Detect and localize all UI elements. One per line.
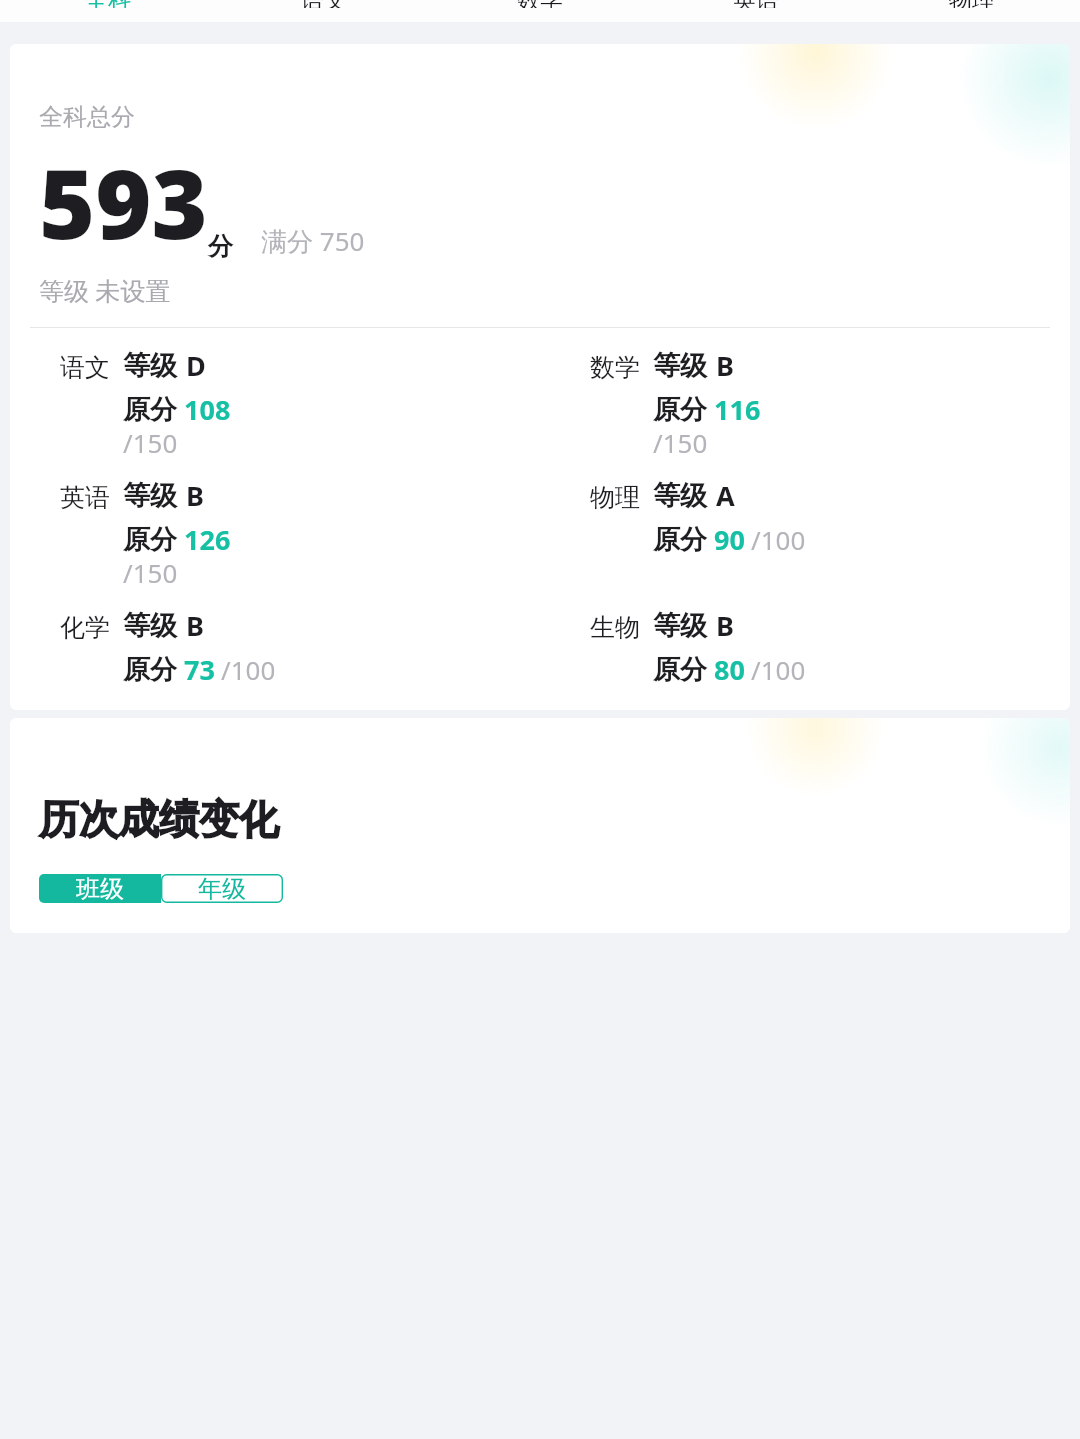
staticText: 73 — [184, 651, 215, 688]
staticText: B — [716, 347, 734, 384]
staticText: 90 — [714, 521, 745, 558]
staticText: B — [186, 477, 204, 514]
button[interactable]: 班级 — [39, 874, 161, 903]
staticText: 等级 — [653, 479, 707, 513]
staticText: 116 — [714, 391, 761, 428]
staticText: 原分 — [653, 393, 707, 427]
staticText: 语文 — [301, 0, 347, 8]
staticText: 年级 — [198, 874, 246, 903]
staticText: 英语 — [10, 482, 110, 513]
staticText: 历次成绩变化 — [39, 794, 279, 844]
staticText: 80 — [714, 651, 745, 688]
staticText: 等级 — [653, 349, 707, 383]
button[interactable]: 物理 — [864, 0, 1080, 22]
button[interactable]: 英语 — [648, 0, 864, 22]
staticText: 分 — [208, 231, 233, 262]
staticText: 满分 750 — [261, 223, 365, 259]
staticText: 等级 — [123, 349, 177, 383]
staticText: 英语 — [733, 0, 779, 8]
button[interactable]: 语文 — [216, 0, 432, 22]
staticText: 全科总分 — [39, 102, 135, 132]
staticText: 原分 — [653, 523, 707, 557]
staticText: 等级 — [123, 479, 177, 513]
button[interactable]: 数学 — [432, 0, 648, 22]
staticText: 班级 — [76, 874, 124, 903]
staticText: 等级 — [123, 609, 177, 643]
staticText: 化学 — [10, 612, 110, 643]
staticText: /150 — [123, 555, 178, 590]
staticText: /150 — [653, 425, 708, 460]
staticText: B — [186, 607, 204, 644]
button[interactable]: 物理 — [540, 477, 1070, 558]
staticText: 数学 — [540, 352, 640, 383]
staticText: D — [186, 347, 206, 384]
button[interactable]: 数学 — [540, 347, 1070, 463]
staticText: 全科 — [85, 0, 131, 8]
button[interactable]: 年级 — [161, 874, 283, 903]
staticText: /100 — [751, 522, 806, 557]
button[interactable]: 生物 — [540, 607, 1070, 688]
staticText: 108 — [184, 391, 231, 428]
staticText: 数学 — [517, 0, 563, 8]
button[interactable]: 全科 — [0, 0, 216, 22]
staticText: 原分 — [653, 653, 707, 687]
staticText: 等级 未设置 — [39, 273, 171, 307]
staticText: 原分 — [123, 523, 177, 557]
staticText: 生物 — [540, 612, 640, 643]
button[interactable]: 化学 — [10, 607, 540, 688]
staticText: /100 — [221, 652, 276, 687]
staticText: 原分 — [123, 393, 177, 427]
staticText: 物理 — [949, 0, 995, 8]
button[interactable]: 语文 — [10, 347, 540, 463]
staticText: A — [716, 477, 735, 514]
staticText: 126 — [184, 521, 231, 558]
button[interactable]: 英语 — [10, 477, 540, 593]
staticText: 语文 — [10, 352, 110, 383]
staticText: /150 — [123, 425, 178, 460]
staticText: 593 — [39, 136, 208, 267]
staticText: 原分 — [123, 653, 177, 687]
staticText: 物理 — [540, 482, 640, 513]
staticText: /100 — [751, 652, 806, 687]
staticText: B — [716, 607, 734, 644]
staticText: 等级 — [653, 609, 707, 643]
